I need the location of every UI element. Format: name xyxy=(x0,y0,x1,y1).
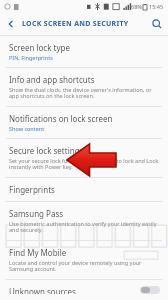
staticText: Use biometric authentication to verify y… xyxy=(9,220,160,234)
staticText: Show content xyxy=(9,125,45,132)
button[interactable]: Unknown sources toggle xyxy=(140,286,160,294)
staticText: Set your secure lock functions, such as … xyxy=(9,157,160,171)
button[interactable]: Screen lock type xyxy=(0,36,168,67)
staticText: Screen lock type xyxy=(9,42,70,53)
button[interactable]: Info and app shortcuts xyxy=(0,68,168,106)
staticText: 68% xyxy=(131,3,142,10)
staticText: Unknown sources xyxy=(9,286,76,294)
button[interactable]: Back xyxy=(0,13,22,35)
staticText: PIN, Fingerprints xyxy=(9,54,53,61)
staticText: LOCK SCREEN AND SECURITY xyxy=(22,19,129,29)
staticText: Show the dual clock, the device owner's … xyxy=(9,86,160,100)
staticText: Secure lock settings xyxy=(9,145,84,156)
button[interactable]: Fingerprints xyxy=(0,178,168,201)
button[interactable]: Unknown sources xyxy=(0,280,168,300)
staticText: Find My Mobile xyxy=(9,247,67,258)
button[interactable]: Notifications on lock screen xyxy=(0,107,168,138)
button[interactable]: Samsung Pass xyxy=(0,202,168,240)
staticText: Locate and control your device remotely … xyxy=(9,259,160,273)
staticText: 15:45 xyxy=(149,3,164,10)
staticText: Info and app shortcuts xyxy=(9,74,95,85)
button[interactable]: Secure lock settings xyxy=(0,139,168,177)
button[interactable]: Find My Mobile xyxy=(0,241,168,279)
staticText: Fingerprints xyxy=(9,184,55,195)
button[interactable]: Search xyxy=(146,13,168,35)
staticText: Samsung Pass xyxy=(9,208,64,219)
staticText: Notifications on lock screen xyxy=(9,113,113,124)
other: Arrow pointing to Fingerprints xyxy=(0,0,168,300)
